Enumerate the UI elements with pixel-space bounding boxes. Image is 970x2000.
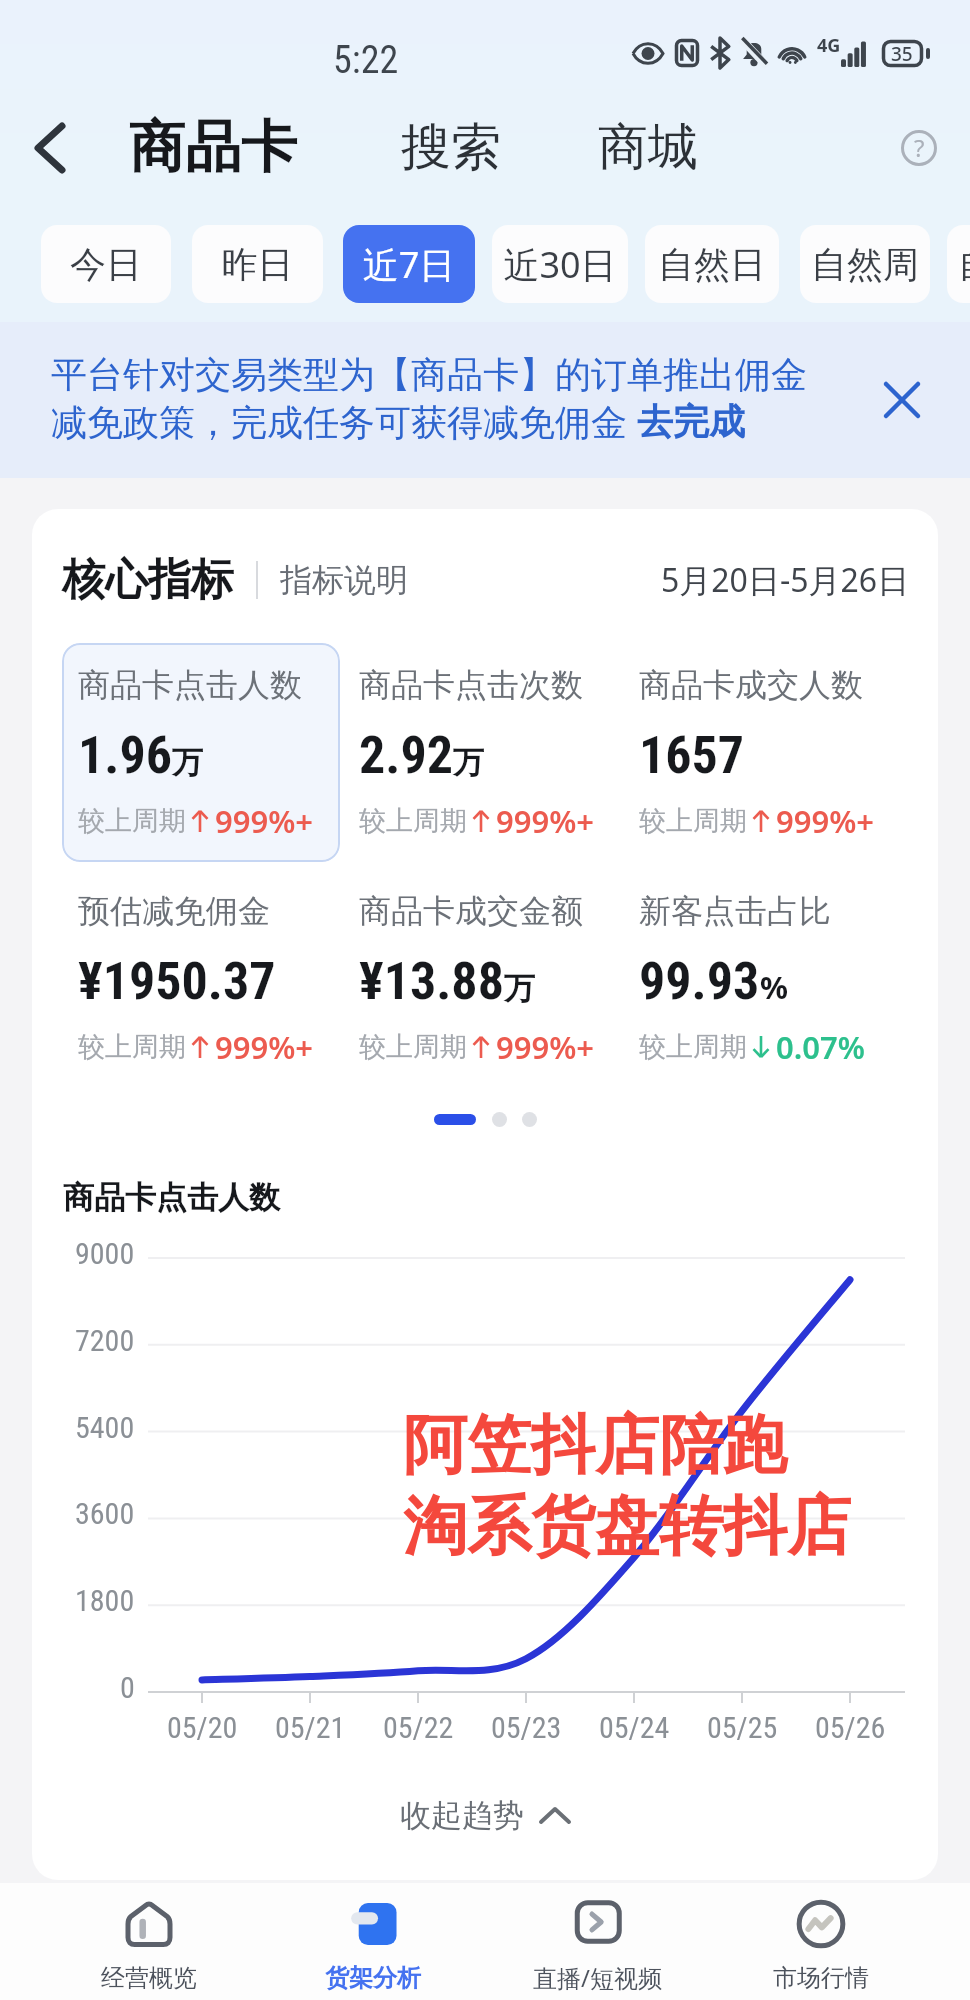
staticText: 昨日 bbox=[192, 242, 323, 287]
staticText: 商品卡成交金额 bbox=[359, 891, 583, 931]
staticText: 05/22 bbox=[383, 1710, 454, 1745]
staticText: ? bbox=[914, 131, 925, 164]
button[interactable]: 自然日 bbox=[645, 225, 779, 303]
staticText: 今日 bbox=[41, 242, 171, 287]
button[interactable]: 今日 bbox=[41, 225, 171, 303]
staticText: 搜索 bbox=[401, 116, 501, 179]
staticText: ¥13.88 bbox=[359, 951, 504, 1012]
staticText: 999%+ bbox=[496, 800, 595, 842]
staticText: 1800 bbox=[75, 1583, 135, 1618]
staticText: 近30日 bbox=[492, 240, 628, 289]
button[interactable]: 近30日 bbox=[492, 225, 628, 303]
staticText: 5:22 bbox=[333, 38, 399, 83]
staticText: 市场行情 bbox=[773, 1963, 869, 1993]
button[interactable]: 商品卡成交人数 bbox=[623, 643, 901, 862]
staticText: 新客点击占比 bbox=[639, 891, 831, 931]
staticText: 05/21 bbox=[275, 1710, 346, 1745]
staticText: 商品卡 bbox=[129, 112, 297, 183]
staticText: 指标说明 bbox=[280, 560, 408, 600]
staticText: 自然月 bbox=[947, 242, 970, 287]
button[interactable]: Help bbox=[887, 116, 951, 180]
staticText: 较上周期 bbox=[359, 804, 467, 838]
button[interactable]: 商品卡成交金额 bbox=[343, 869, 621, 1088]
button[interactable]: 自然月 bbox=[947, 225, 970, 303]
staticText: 较上周期 bbox=[78, 1030, 186, 1064]
button[interactable]: 商品卡点击人数 bbox=[62, 643, 340, 862]
staticText: 核心指标 bbox=[62, 553, 234, 607]
staticText: 7200 bbox=[75, 1323, 135, 1358]
staticText: % bbox=[760, 966, 788, 1008]
staticText: 商品卡成交人数 bbox=[639, 665, 863, 705]
staticText: 05/25 bbox=[707, 1710, 778, 1745]
staticText: 减免政策，完成任务可获得减免佣金 bbox=[51, 397, 637, 446]
staticText: 5月20日-5月26日 bbox=[661, 558, 910, 602]
button[interactable]: 自然周 bbox=[800, 225, 930, 303]
button[interactable]: Back bbox=[13, 111, 87, 185]
button[interactable]: 商品卡 bbox=[129, 112, 297, 183]
staticText: 1.96 bbox=[78, 725, 172, 786]
staticText: 预估减免佣金 bbox=[78, 891, 270, 931]
staticText: 4G bbox=[817, 33, 841, 58]
staticText: 近7日 bbox=[343, 240, 475, 289]
staticText: 3600 bbox=[75, 1496, 135, 1531]
staticText: 万 bbox=[172, 743, 203, 782]
staticText: 99.93 bbox=[639, 951, 760, 1012]
button[interactable]: 搜索 bbox=[401, 116, 501, 179]
staticText: 阿笠抖店陪跑 bbox=[403, 1405, 787, 1486]
staticText: 5400 bbox=[75, 1410, 135, 1445]
button[interactable]: Close bbox=[872, 370, 932, 430]
staticText: 收起趋势 bbox=[400, 1796, 524, 1835]
staticText: 货架分析 bbox=[325, 1963, 421, 1993]
button[interactable]: 收起趋势 bbox=[32, 1782, 938, 1849]
staticText: 商品卡点击次数 bbox=[359, 665, 583, 705]
button[interactable]: 去完成 bbox=[637, 399, 745, 444]
staticText: 去完成 bbox=[637, 399, 745, 444]
staticText: 999%+ bbox=[215, 800, 314, 842]
staticText: 较上周期 bbox=[78, 804, 186, 838]
button[interactable]: 商品卡点击次数 bbox=[343, 643, 621, 862]
staticText: 商品卡点击人数 bbox=[63, 1178, 280, 1217]
staticText: 较上周期 bbox=[359, 1030, 467, 1064]
staticText: 较上周期 bbox=[639, 804, 747, 838]
staticText: 999%+ bbox=[496, 1026, 595, 1068]
staticText: 万 bbox=[504, 969, 535, 1008]
staticText: 35 bbox=[891, 41, 913, 67]
staticText: 05/20 bbox=[167, 1710, 238, 1745]
staticText: 05/26 bbox=[815, 1710, 886, 1745]
button[interactable]: 预估减免佣金 bbox=[62, 869, 340, 1088]
button[interactable]: 昨日 bbox=[192, 225, 323, 303]
button[interactable]: 指标说明 bbox=[280, 560, 408, 600]
staticText: 商城 bbox=[598, 116, 698, 179]
staticText: 05/24 bbox=[599, 1710, 670, 1745]
staticText: 经营概览 bbox=[101, 1963, 197, 1993]
staticText: 直播/短视频 bbox=[533, 1961, 662, 1994]
staticText: 1657 bbox=[639, 725, 745, 786]
staticText: 平台针对交易类型为【商品卡】的订单推出佣金 bbox=[51, 352, 807, 397]
staticText: 9000 bbox=[75, 1236, 135, 1271]
staticText: 自然周 bbox=[800, 242, 930, 287]
staticText: 万 bbox=[453, 743, 484, 782]
button[interactable]: 经营概览 bbox=[37, 1883, 261, 2000]
staticText: 2.92 bbox=[359, 725, 453, 786]
button[interactable]: 货架分析 bbox=[261, 1883, 485, 2000]
staticText: 较上周期 bbox=[639, 1030, 747, 1064]
staticText: 0.07% bbox=[776, 1026, 865, 1068]
button[interactable]: 新客点击占比 bbox=[623, 869, 901, 1088]
staticText: ¥1950.37 bbox=[78, 951, 276, 1012]
button[interactable]: 市场行情 bbox=[709, 1883, 933, 2000]
button[interactable]: 直播/短视频 bbox=[485, 1883, 709, 2000]
staticText: 0 bbox=[120, 1670, 135, 1705]
staticText: 商品卡点击人数 bbox=[78, 665, 302, 705]
button[interactable]: 近7日 bbox=[343, 225, 475, 303]
staticText: 999%+ bbox=[776, 800, 875, 842]
button[interactable]: 商城 bbox=[598, 116, 698, 179]
staticText: 05/23 bbox=[491, 1710, 562, 1745]
staticText: 自然日 bbox=[645, 242, 779, 287]
staticText: 999%+ bbox=[215, 1026, 314, 1068]
staticText: 淘系货盘转抖店 bbox=[403, 1486, 851, 1567]
